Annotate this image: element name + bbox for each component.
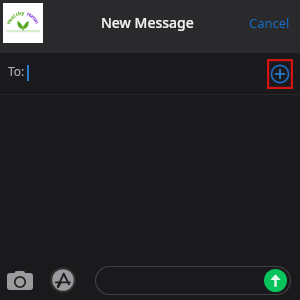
button[interactable]: Send xyxy=(264,269,287,292)
staticText: New Message xyxy=(101,13,194,32)
button[interactable]: Message input field xyxy=(95,266,291,295)
button[interactable]: Apps xyxy=(49,266,77,294)
button[interactable]: Add contact xyxy=(267,59,293,89)
staticText: Cancel xyxy=(249,14,290,32)
staticText: To: xyxy=(8,63,25,79)
button[interactable]: Healthy Human logo xyxy=(3,3,43,43)
button[interactable]: Camera xyxy=(4,268,36,292)
button[interactable]: Cancel xyxy=(243,9,296,37)
